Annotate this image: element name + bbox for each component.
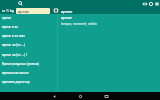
staticText: времеви директор [2, 80, 30, 84]
button[interactable]: ru [0, 7, 15, 14]
staticText: време [61, 16, 72, 20]
staticText: време [18, 9, 30, 14]
staticText: Време разделно (режим) [2, 62, 40, 66]
button[interactable]: Време разделно (режим) [0, 60, 57, 69]
button[interactable]: време в за съм [0, 32, 57, 41]
staticText: ru [2, 9, 5, 13]
staticText: време в за съм [2, 34, 25, 38]
button[interactable]: Camera translate [52, 7, 60, 14]
staticText: време [61, 9, 73, 14]
button[interactable]: времеви директор [0, 78, 57, 87]
staticText: време [2, 16, 12, 20]
button[interactable]: времеизчисление [0, 69, 57, 78]
staticText: tempo, moment, mihlo [61, 22, 97, 26]
button[interactable]: Home [75, 92, 85, 100]
staticText: време на (по ~) [2, 43, 25, 47]
button[interactable]: време [0, 14, 57, 23]
staticText: времеизчисление [2, 71, 29, 75]
staticText: време в за [2, 25, 18, 29]
button[interactable]: време на (по ~) [0, 41, 57, 50]
button[interactable]: време на (по ~) 1 [0, 51, 57, 60]
button[interactable]: време [16, 8, 50, 14]
button[interactable]: Back [49, 92, 59, 100]
staticText: време на (по ~) 1 [2, 53, 28, 57]
staticText: bg [10, 9, 14, 13]
button[interactable]: Recent apps [101, 92, 111, 100]
button[interactable]: време в за [0, 23, 57, 32]
